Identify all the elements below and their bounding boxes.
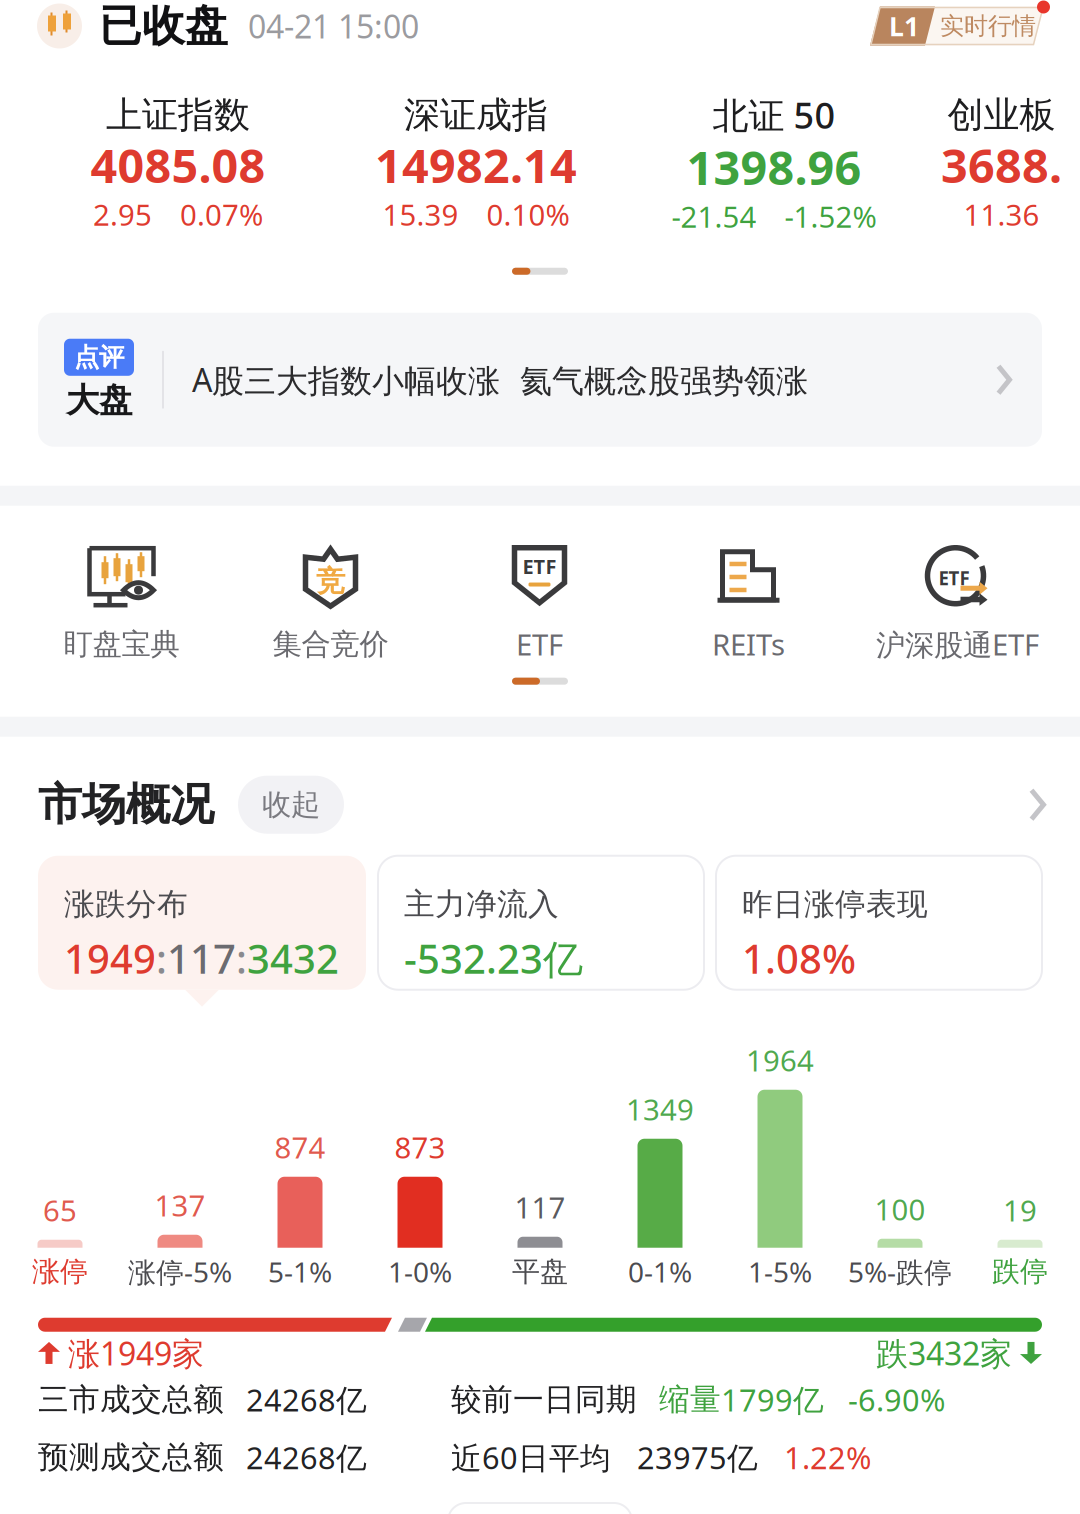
staticText: 涨停 [32,1254,88,1289]
staticText: ETF [522,553,556,580]
staticText: -6.90% [848,1379,945,1420]
staticText: 1349 [626,1090,694,1129]
staticText: ETF [938,566,969,590]
button[interactable]: ETF [435,541,644,664]
staticText: 1-5% [748,1253,812,1290]
staticText: 23975亿 [637,1437,758,1478]
staticText: 11.36 [963,195,1039,234]
button[interactable]: 北证 50 [625,91,923,236]
staticText: -532.23亿 [404,932,583,985]
staticText: 预测成交总额 [38,1438,224,1476]
staticText: 沪深股通ETF [876,625,1039,664]
button[interactable]: REITs [644,541,853,664]
staticText: -1.52% [784,197,876,236]
button[interactable]: 主力净流入 [378,856,704,990]
staticText: 0.10% [486,195,569,234]
staticText: 137 [154,1186,205,1225]
button[interactable]: 涨跌分布 [38,856,366,1007]
staticText: 主力净流入 [404,885,559,923]
staticText: 24268亿 [246,1379,367,1420]
staticText: 缩量 [659,1381,721,1418]
staticText: 3688. [941,134,1062,196]
staticText: 三市成交总额 [38,1381,224,1418]
staticText: 100 [874,1190,925,1229]
staticText: A股三大指数小幅收涨 氦气概念股强势领涨 [192,358,808,401]
staticText: 北证 50 [712,91,835,139]
staticText: 1-0% [388,1253,452,1290]
button[interactable]: 昨日涨停表现 [716,856,1042,990]
staticText: -21.54 [671,197,756,236]
staticText: 15.39 [382,195,458,234]
staticText: 1.08% [742,932,856,985]
staticText: 0.07% [180,195,263,234]
staticText: 跌停 [992,1254,1048,1289]
staticText: 4085.08 [90,134,265,196]
staticText: 1964 [746,1041,814,1080]
staticText: 0-1% [628,1253,692,1290]
staticText: 盯盘宝典 [63,626,179,662]
staticText: 平盘 [512,1254,568,1289]
staticText: 2.95 [93,195,152,234]
staticText: ETF [516,625,563,664]
staticText: 实时行情 [940,11,1036,41]
staticText: 5%-跌停 [848,1253,952,1290]
staticText: REITs [712,625,785,664]
staticText: : [236,932,247,985]
button[interactable]: ETF [853,541,1062,664]
staticText: 较前一日同期 [451,1381,637,1418]
staticText: 收起 [262,787,320,823]
staticText: 涨1949家 [68,1332,204,1374]
staticText: 点评 [74,342,124,373]
staticText: 创业板 [947,93,1055,137]
button[interactable]: Expand market overview [1029,788,1080,822]
button[interactable]: 盯盘宝典 [17,542,226,662]
staticText: 昨日涨停表现 [742,885,928,923]
staticText: 04-21 15:00 [248,5,419,47]
staticText: 1949 [64,932,156,985]
staticText: 19 [1003,1191,1037,1230]
staticText: 24268亿 [246,1437,367,1478]
staticText: 集合竞价 [272,626,388,662]
button[interactable]: 创业板 [923,93,1080,234]
staticText: 873 [394,1128,445,1167]
staticText: 65 [43,1191,77,1230]
staticText: 1398.96 [686,136,861,198]
staticText: 117 [167,932,236,985]
button[interactable]: L1 [870,6,1046,45]
staticText: 涨停-5% [128,1253,232,1290]
staticText: 深证成指 [404,93,548,137]
staticText: 874 [274,1128,325,1167]
staticText: 1799亿 [721,1379,824,1420]
staticText: 涨跌分布 [64,885,188,923]
staticText: 已收盘 [99,0,228,52]
staticText: 上证指数 [106,93,250,137]
staticText: : [156,932,167,985]
staticText: 3432 [247,932,339,985]
button[interactable]: 点评 [38,313,1042,447]
button[interactable]: 竞 [226,542,435,662]
staticText: 竞 [316,563,345,599]
button[interactable]: 收起 [238,776,344,834]
staticText: L1 [889,8,919,44]
button[interactable]: 深证成指 [327,93,625,234]
staticText: 117 [514,1188,565,1227]
staticText: 近60日平均 [451,1437,611,1478]
staticText: 14982.14 [375,134,577,196]
staticText: 5-1% [268,1253,332,1290]
button[interactable]: 上证指数 [29,93,327,234]
staticText: 大盘 [66,380,132,421]
staticText: 跌3432家 [876,1332,1012,1374]
staticText: 1.22% [784,1437,871,1478]
staticText: 市场概况 [38,778,214,832]
